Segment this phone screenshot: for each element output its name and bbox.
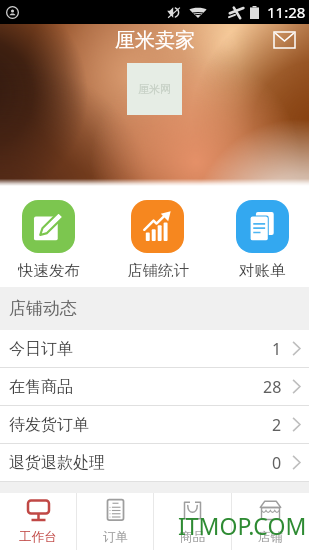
staticText: 待发货订单 <box>9 415 89 435</box>
staticText: 11:28 <box>267 2 306 22</box>
button[interactable]: 店铺 <box>232 493 309 550</box>
staticText: 商品 <box>180 529 205 545</box>
staticText: 店铺统计 <box>127 261 189 277</box>
staticText: 店铺动态 <box>9 298 77 319</box>
staticText: 2 <box>272 414 282 436</box>
button[interactable]: 商品 <box>154 493 231 550</box>
button[interactable]: 对账单 <box>222 186 303 287</box>
staticText: ITMOP.COM <box>178 510 307 541</box>
staticText: 厘米网 <box>138 82 171 96</box>
button[interactable]: Messages <box>269 25 299 55</box>
staticText: 28 <box>263 376 282 398</box>
staticText: 在售商品 <box>9 377 73 397</box>
staticText: 对账单 <box>239 261 286 277</box>
button[interactable]: 退货退款处理 <box>0 444 309 482</box>
button[interactable]: 工作台 <box>0 493 76 550</box>
staticText: 退货退款处理 <box>9 453 105 473</box>
staticText: 订单 <box>103 529 128 545</box>
button[interactable]: 今日订单 <box>0 330 309 368</box>
staticText: 快速发布 <box>18 261 80 277</box>
staticText: 0 <box>272 452 282 474</box>
button[interactable]: 快速发布 <box>8 186 89 287</box>
staticText: 店铺 <box>258 529 283 545</box>
button[interactable]: 订单 <box>77 493 153 550</box>
staticText: 今日订单 <box>9 339 73 359</box>
button[interactable]: 店铺统计 <box>117 186 198 287</box>
staticText: 1 <box>272 338 282 360</box>
button[interactable]: 待发货订单 <box>0 406 309 444</box>
staticText: 工作台 <box>19 529 57 545</box>
staticText: 厘米卖家 <box>115 28 195 53</box>
button[interactable]: 在售商品 <box>0 368 309 406</box>
